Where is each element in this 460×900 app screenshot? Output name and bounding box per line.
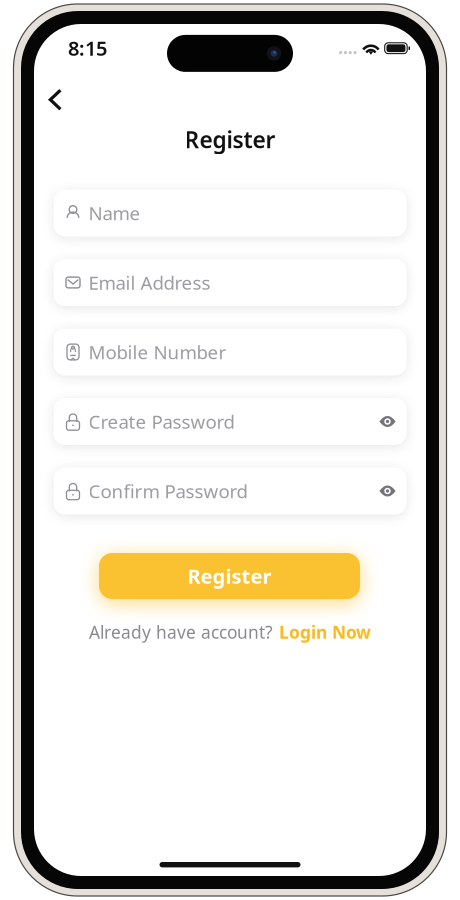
staticText: Login Now — [279, 620, 371, 643]
staticText: Name — [88, 201, 140, 225]
staticText: Register — [184, 124, 275, 154]
button[interactable]: Back — [34, 81, 78, 119]
button[interactable]: Already have account? — [34, 621, 426, 643]
button[interactable]: Create Password — [53, 398, 406, 445]
staticText: Email Address — [88, 270, 210, 295]
staticText: Already have account? — [89, 620, 273, 643]
staticText: Mobile Number — [88, 340, 226, 364]
button[interactable]: Email Address — [53, 259, 406, 306]
button[interactable]: Mobile Number — [53, 328, 406, 375]
staticText: Register — [187, 563, 271, 589]
staticText: Create Password — [88, 409, 234, 434]
staticText: 8:15 — [68, 35, 107, 61]
button[interactable]: Name — [53, 189, 406, 236]
staticText: Confirm Password — [88, 479, 247, 503]
button[interactable]: Register — [99, 553, 360, 599]
button[interactable]: Confirm Password — [53, 467, 406, 514]
